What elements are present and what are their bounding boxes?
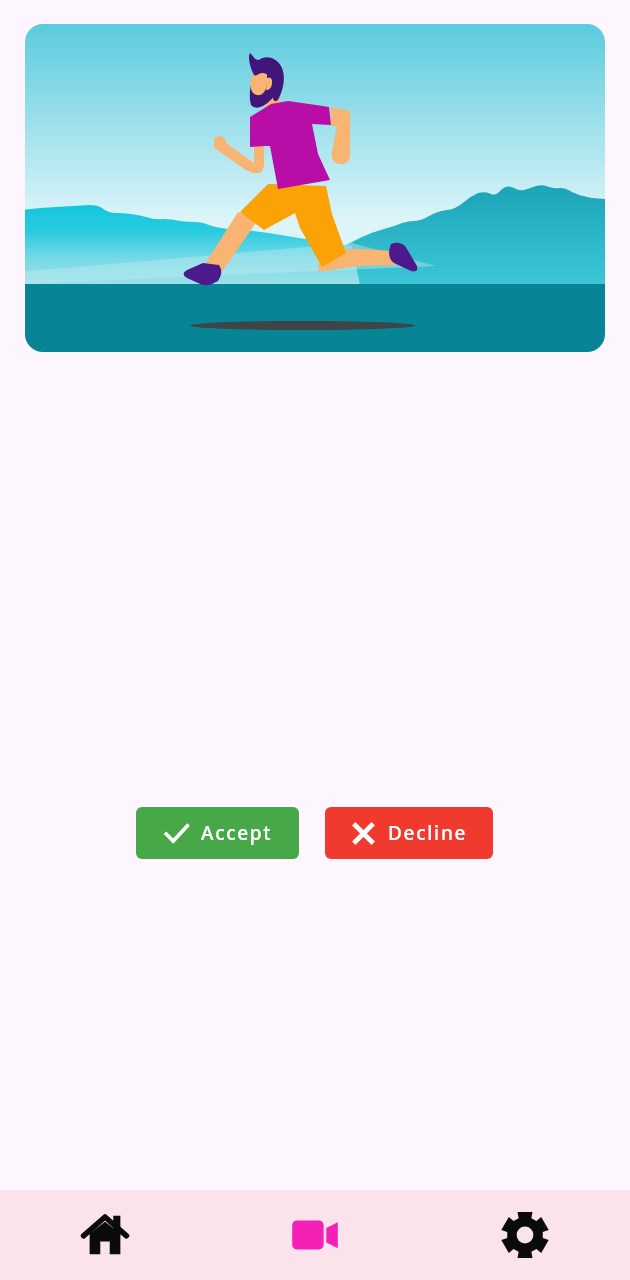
button[interactable]: Home [0,1190,210,1280]
staticText: Decline [388,820,468,846]
staticText: Accept [201,820,273,846]
button[interactable]: Video call [210,1190,420,1280]
button[interactable]: Accept [136,807,299,859]
button[interactable]: Settings [420,1190,630,1280]
button[interactable]: Decline [325,807,493,859]
